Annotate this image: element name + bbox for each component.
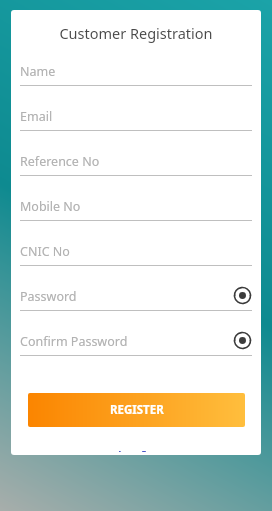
staticText: Confirm Password [20, 333, 128, 350]
button[interactable]: Name [20, 57, 252, 102]
button[interactable]: Password [20, 282, 252, 327]
staticText: Mobile No [20, 198, 81, 215]
staticText: Customer Registration [20, 23, 252, 43]
button[interactable]: Show password [232, 330, 252, 350]
button[interactable]: Show password [232, 285, 252, 305]
staticText: Log In [118, 448, 154, 452]
button[interactable]: Reference No [20, 147, 252, 192]
staticText: Password [20, 288, 77, 305]
button[interactable]: REGISTER [28, 393, 245, 427]
button[interactable]: Confirm Password [20, 327, 252, 372]
staticText: Name [20, 63, 56, 80]
staticText: Reference No [20, 153, 100, 170]
button[interactable]: Email [20, 102, 252, 147]
button[interactable]: Log In [110, 445, 162, 455]
staticText: Email [20, 108, 53, 125]
staticText: CNIC No [20, 243, 70, 260]
button[interactable]: CNIC No [20, 237, 252, 282]
button[interactable]: Mobile No [20, 192, 252, 237]
staticText: REGISTER [110, 402, 164, 418]
